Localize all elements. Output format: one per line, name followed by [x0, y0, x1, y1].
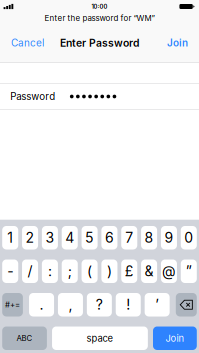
- button[interactable]: 4: [62, 226, 78, 249]
- button[interactable]: @: [161, 259, 177, 283]
- staticText: 4: [65, 229, 74, 246]
- button[interactable]: /: [22, 259, 38, 283]
- button[interactable]: 6: [101, 226, 117, 249]
- staticText: @: [162, 263, 176, 280]
- staticText: (: [87, 263, 92, 280]
- staticText: &: [145, 263, 154, 280]
- button[interactable]: 2: [22, 226, 38, 249]
- button[interactable]: !: [116, 293, 141, 316]
- button[interactable]: ABC: [2, 326, 47, 350]
- button[interactable]: 9: [161, 226, 177, 249]
- staticText: Cancel: [11, 37, 44, 49]
- staticText: Join: [165, 333, 184, 344]
- button[interactable]: ;: [62, 259, 78, 283]
- button[interactable]: -: [2, 259, 18, 283]
- staticText: #+=: [5, 300, 20, 309]
- staticText: 1: [7, 229, 13, 246]
- staticText: Enter the password for “WM”: [44, 13, 154, 23]
- staticText: Join: [167, 37, 188, 49]
- staticText: 0: [184, 229, 193, 246]
- button[interactable]: &: [141, 259, 157, 283]
- button[interactable]: 1: [2, 226, 18, 249]
- staticText: ,: [68, 296, 72, 313]
- button[interactable]: ’: [145, 293, 170, 316]
- button[interactable]: 3: [42, 226, 58, 249]
- staticText: 6: [105, 229, 114, 246]
- button[interactable]: ?: [87, 293, 112, 316]
- button[interactable]: Join: [167, 37, 188, 49]
- staticText: 5: [85, 229, 94, 246]
- button[interactable]: :: [42, 259, 58, 283]
- staticText: 8: [145, 229, 154, 246]
- button[interactable]: 7: [121, 226, 137, 249]
- staticText: ”: [186, 263, 192, 280]
- button[interactable]: ): [101, 259, 117, 283]
- staticText: 2: [26, 229, 35, 246]
- staticText: /: [28, 263, 33, 280]
- staticText: !: [126, 296, 130, 313]
- button[interactable]: (: [82, 259, 98, 283]
- button[interactable]: 0: [181, 226, 197, 249]
- staticText: £: [125, 263, 134, 280]
- button[interactable]: 8: [141, 226, 157, 249]
- staticText: 9: [164, 229, 173, 246]
- button[interactable]: ,: [58, 293, 83, 316]
- staticText: 10:00: [91, 3, 107, 10]
- staticText: .: [40, 296, 44, 313]
- staticText: Password: [10, 91, 55, 102]
- button[interactable]: #+=: [2, 293, 23, 316]
- button[interactable]: .: [29, 293, 54, 316]
- staticText: -: [7, 263, 13, 280]
- staticText: ABC: [17, 334, 33, 343]
- button[interactable]: £: [121, 259, 137, 283]
- button[interactable]: Cancel: [11, 37, 44, 49]
- staticText: :: [48, 263, 52, 280]
- staticText: ?: [96, 296, 103, 313]
- button[interactable]: space: [52, 326, 148, 350]
- staticText: ): [107, 263, 112, 280]
- staticText: 7: [125, 229, 133, 246]
- staticText: 3: [45, 229, 54, 246]
- staticText: ;: [68, 263, 72, 280]
- button[interactable]: Join: [153, 326, 197, 350]
- button[interactable]: 5: [82, 226, 98, 249]
- staticText: ’: [155, 296, 159, 313]
- staticText: Enter Password: [60, 37, 139, 49]
- button[interactable]: Delete: [176, 293, 197, 316]
- staticText: space: [86, 332, 113, 344]
- button[interactable]: ”: [181, 259, 197, 283]
